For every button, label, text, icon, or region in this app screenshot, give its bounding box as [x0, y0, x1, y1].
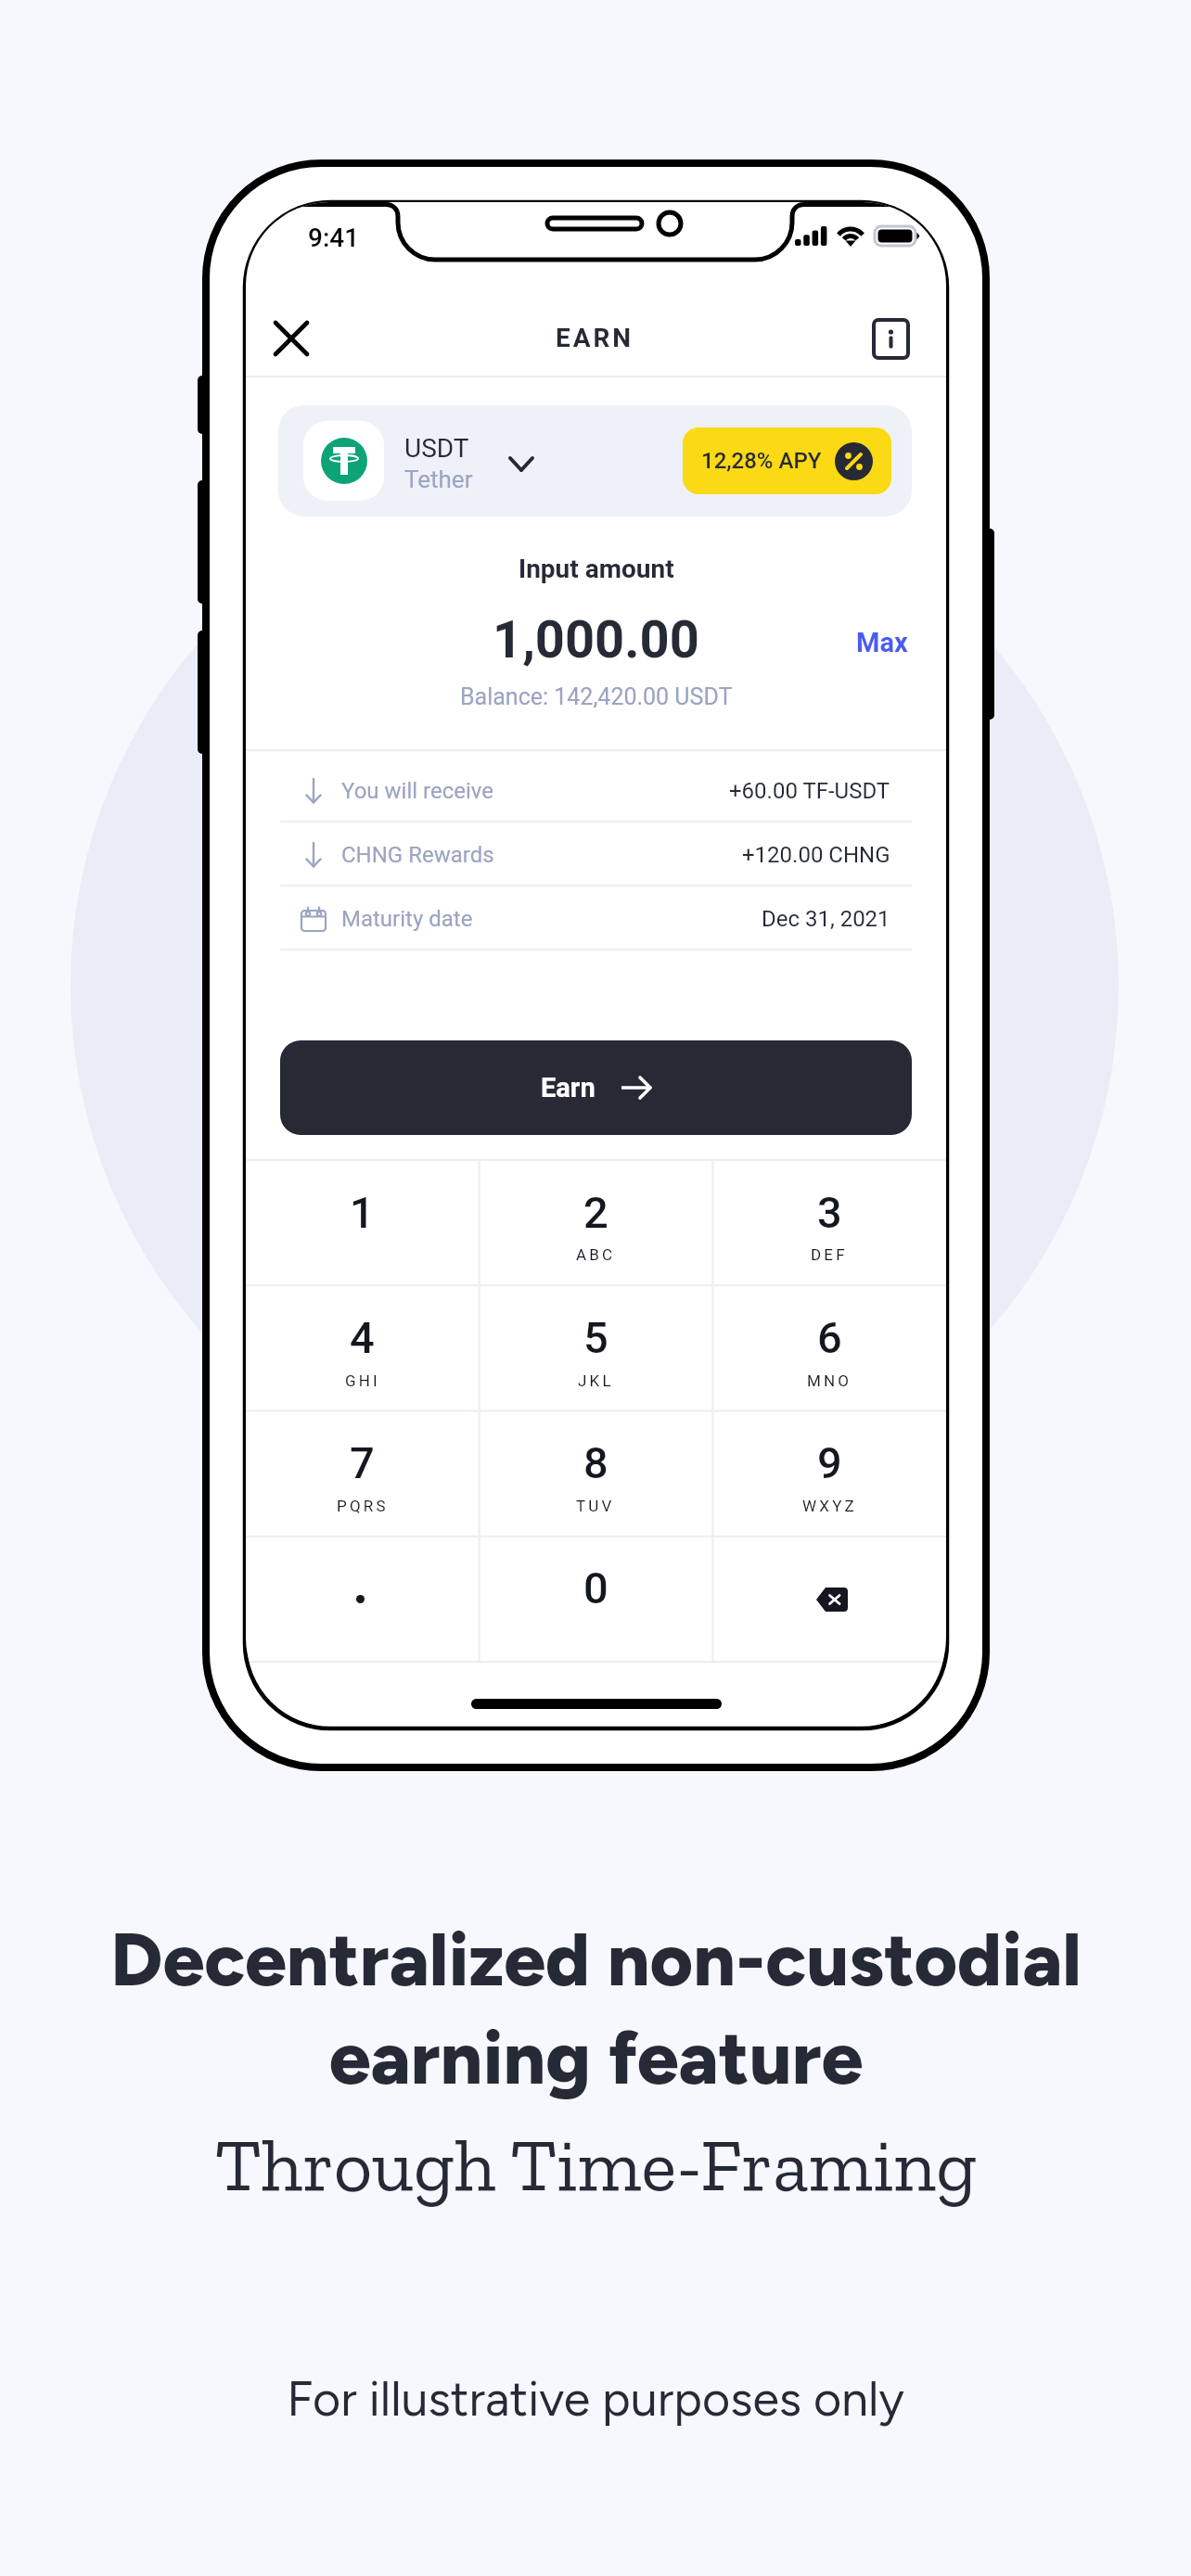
- staticText: +60.00 TF-USDT: [729, 778, 890, 804]
- staticText: Balance: 142,420.00 USDT: [460, 683, 733, 710]
- other: Delete: [816, 1588, 848, 1612]
- staticText: Decentralized non-custodial earning feat…: [110, 1915, 1082, 2102]
- staticText: MNO: [807, 1371, 852, 1390]
- staticText: +120.00 CHNG: [742, 842, 890, 868]
- staticText: GHI: [345, 1371, 380, 1390]
- staticText: 7: [350, 1437, 375, 1488]
- staticText: Maturity date: [341, 906, 473, 932]
- button[interactable]: 4: [246, 1286, 479, 1411]
- staticText: 2: [583, 1187, 608, 1238]
- button[interactable]: Delete: [712, 1537, 946, 1662]
- staticText: ABC: [576, 1245, 616, 1264]
- button[interactable]: 1: [246, 1160, 479, 1286]
- staticText: Input amount: [519, 554, 674, 584]
- staticText: DEF: [811, 1245, 848, 1264]
- staticText: TUV: [576, 1497, 615, 1515]
- staticText: For illustrative purposes only: [287, 2370, 904, 2428]
- button[interactable]: 7: [246, 1411, 479, 1537]
- staticText: PQRS: [337, 1497, 389, 1515]
- staticText: Max: [856, 627, 908, 658]
- button[interactable]: Earn: [280, 1040, 912, 1135]
- staticText: 9: [817, 1437, 842, 1488]
- button[interactable]: Info: [864, 312, 916, 364]
- staticText: 1,000.00: [493, 609, 699, 670]
- staticText: 0: [583, 1562, 608, 1613]
- button[interactable]: 2: [479, 1160, 712, 1286]
- staticText: EARN: [556, 323, 634, 353]
- button[interactable]: 9: [712, 1411, 946, 1537]
- button[interactable]: USDT: [278, 405, 912, 516]
- button[interactable]: 12,28% APY: [683, 427, 891, 494]
- staticText: 3: [817, 1187, 842, 1238]
- button[interactable]: CHNG Rewards: [279, 823, 912, 886]
- staticText: 4: [350, 1312, 375, 1363]
- button[interactable]: 6: [712, 1286, 946, 1411]
- button[interactable]: Maturity date: [279, 886, 912, 950]
- button[interactable]: 3: [712, 1160, 946, 1286]
- staticText: Earn: [541, 1072, 595, 1103]
- button[interactable]: Max: [856, 627, 908, 658]
- staticText: 8: [583, 1437, 608, 1488]
- button[interactable]: 5: [479, 1286, 712, 1411]
- button[interactable]: Close: [261, 308, 322, 369]
- staticText: Through Time-Framing: [215, 2120, 977, 2209]
- staticText: 1: [350, 1187, 375, 1238]
- staticText: USDT: [404, 433, 469, 464]
- button[interactable]: 0: [479, 1537, 712, 1662]
- staticText: You will receive: [341, 778, 493, 804]
- staticText: JKL: [578, 1371, 614, 1390]
- staticText: 12,28% APY: [701, 448, 822, 474]
- staticText: 9:41: [308, 223, 360, 253]
- button[interactable]: [246, 1537, 479, 1662]
- staticText: 6: [817, 1312, 842, 1363]
- staticText: Tether: [404, 465, 473, 493]
- button[interactable]: 8: [479, 1411, 712, 1537]
- staticText: Dec 31, 2021: [762, 906, 890, 932]
- button[interactable]: You will receive: [279, 759, 912, 823]
- staticText: CHNG Rewards: [341, 842, 494, 868]
- staticText: 5: [583, 1312, 608, 1363]
- staticText: WXYZ: [802, 1497, 857, 1515]
